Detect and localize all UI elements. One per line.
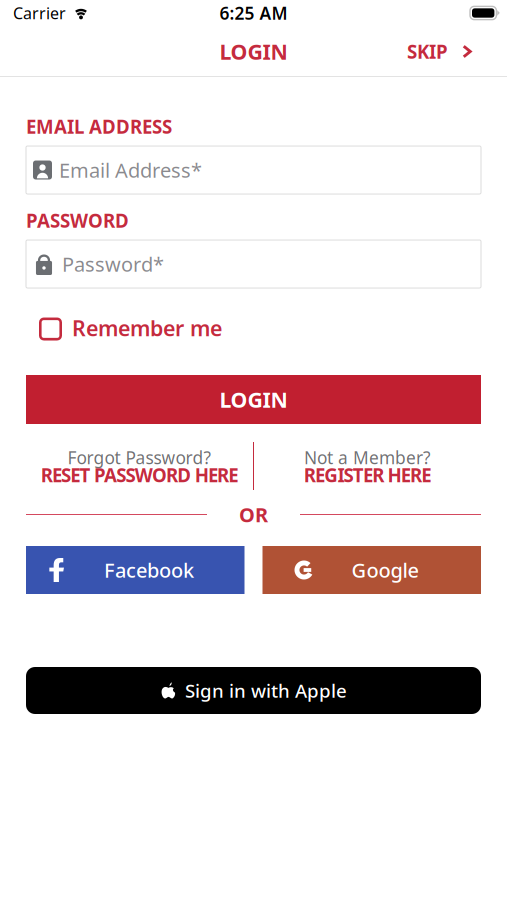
button[interactable]: Not a Member? (254, 442, 481, 490)
button[interactable]: LOGIN (207, 29, 299, 74)
staticText: PASSWORD (26, 208, 129, 233)
button[interactable]: Facebook (26, 546, 244, 594)
staticText: Carrier (13, 2, 66, 24)
staticText: LOGIN (219, 37, 287, 66)
staticText: Facebook (104, 557, 194, 583)
staticText: REGISTER HERE (304, 463, 431, 487)
staticText: Remember me (72, 314, 222, 342)
staticText: EMAIL ADDRESS (26, 114, 172, 139)
staticText: LOGIN (219, 385, 287, 414)
button[interactable]: Remember me (26, 317, 481, 339)
staticText: 6:25 AM (219, 1, 287, 24)
staticText: Not a Member? (304, 446, 431, 469)
button[interactable]: Email Address* (26, 146, 481, 194)
button[interactable]: Sign in with Apple (26, 667, 481, 714)
staticText: SKIP (407, 39, 448, 64)
staticText: Forgot Password? (67, 446, 211, 469)
staticText: Email Address* (59, 157, 202, 183)
button[interactable]: Password* (26, 240, 481, 288)
button[interactable]: Google (262, 546, 481, 594)
button[interactable]: SKIP (398, 31, 481, 72)
button[interactable]: LOGIN (26, 375, 481, 424)
staticText: RESET PASSWORD HERE (41, 463, 238, 487)
staticText: OR (239, 501, 268, 528)
staticText: Sign in with Apple (185, 678, 347, 703)
staticText: Google (351, 557, 418, 583)
button[interactable]: Forgot Password? (26, 442, 253, 490)
staticText: Password* (62, 251, 164, 277)
